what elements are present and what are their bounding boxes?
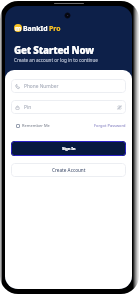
button[interactable]: Forgot Password <box>94 123 126 128</box>
staticText: Remember Me <box>22 123 50 128</box>
staticText: Get Started Now <box>14 44 94 57</box>
staticText: BankId <box>23 24 48 32</box>
staticText: Pin <box>24 104 32 111</box>
button[interactable]: Sign In <box>11 141 126 156</box>
staticText: Sign In <box>62 146 76 152</box>
staticText: Pro <box>49 24 61 32</box>
staticText: Create Account <box>52 167 86 173</box>
button[interactable]: Pin <box>11 100 126 114</box>
button[interactable]: Create Account <box>11 163 126 177</box>
staticText: Create an account or log in to continue <box>14 57 98 63</box>
staticText: m <box>15 24 22 32</box>
staticText: Phone Number <box>24 83 59 90</box>
button[interactable]: Remember Me <box>11 123 50 128</box>
other: Show pin <box>117 105 122 110</box>
button[interactable]: Phone Number <box>11 79 126 93</box>
